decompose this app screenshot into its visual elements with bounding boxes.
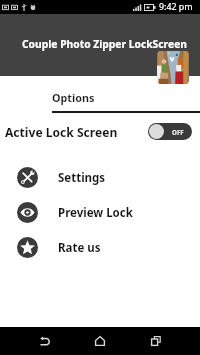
button[interactable]: Active lock screen toggle, off — [148, 123, 192, 140]
button[interactable]: Settings — [0, 160, 200, 195]
button[interactable]: Options — [44, 76, 102, 110]
staticText: Active Lock Screen — [5, 124, 118, 140]
button[interactable]: Back — [27, 327, 63, 355]
button[interactable]: Home — [82, 327, 118, 355]
staticText: Preview Lock — [58, 205, 133, 221]
staticText: 9:42 pm — [159, 1, 193, 13]
button[interactable]: App icon — [157, 51, 189, 84]
staticText: Settings — [58, 170, 106, 186]
staticText: Options — [52, 90, 95, 105]
staticText: OFF — [172, 128, 184, 136]
staticText: Rate us — [58, 240, 101, 256]
button[interactable]: Recent apps — [138, 327, 174, 355]
button[interactable]: Active Lock Screen — [0, 121, 200, 141]
button[interactable]: Preview Lock — [0, 195, 200, 230]
staticText: Couple Photo Zipper LockScreen — [22, 37, 187, 51]
button[interactable]: Rate us — [0, 230, 200, 265]
